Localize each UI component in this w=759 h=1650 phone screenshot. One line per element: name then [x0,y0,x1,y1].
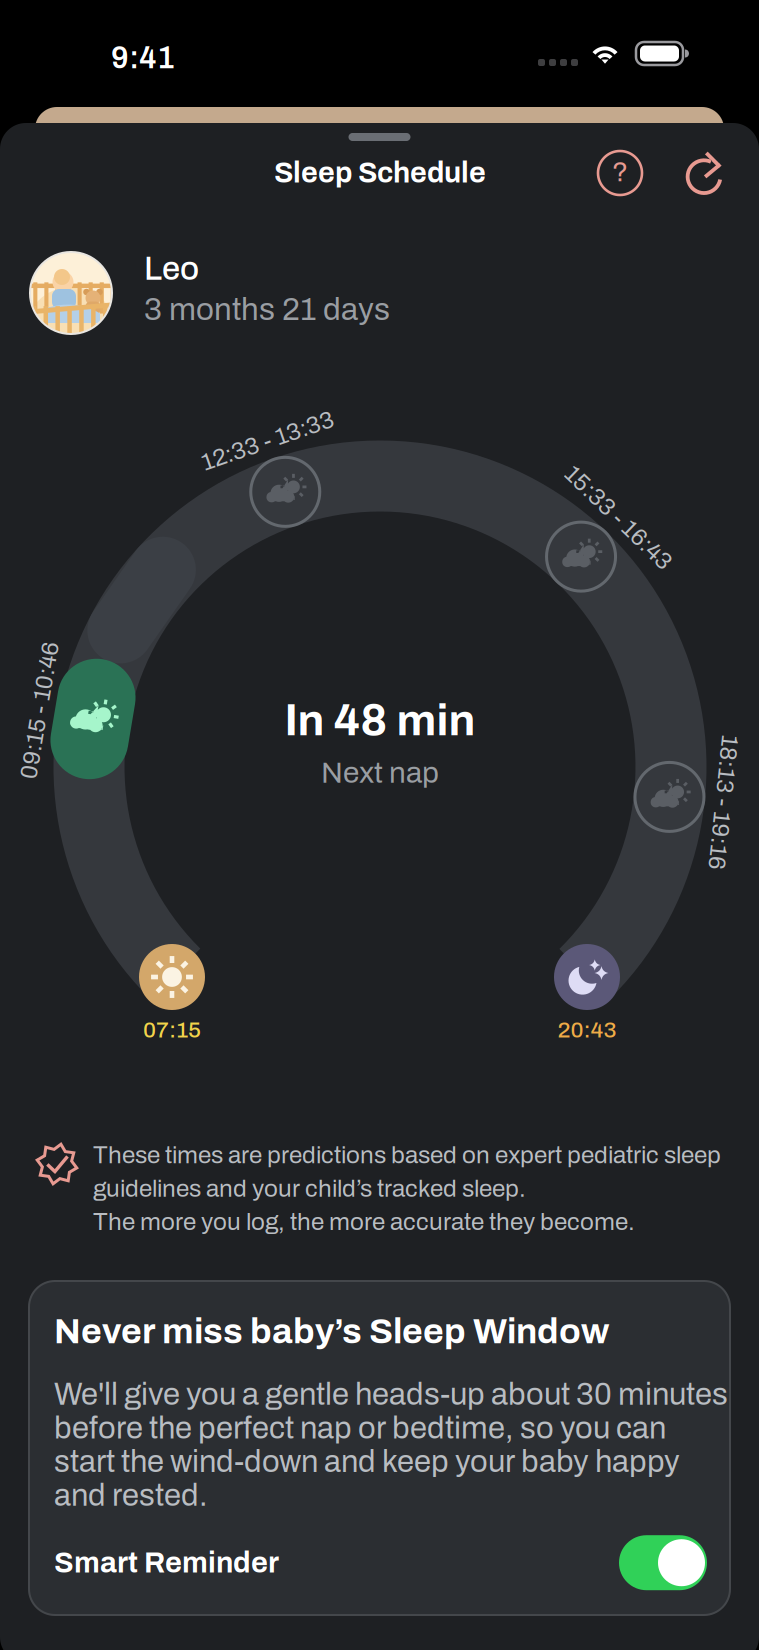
staticText: These times are predictions based on exp… [93,1142,721,1168]
staticText: 07:15 [143,1018,201,1042]
staticText: 18:13 - 19:16 [655,790,759,815]
staticText: The more you log, the more accurate they… [93,1209,635,1235]
staticText: Sleep Schedule [274,157,486,189]
staticText: ? [612,157,628,187]
staticText: 9:41 [111,41,175,75]
staticText: Smart Reminder [54,1547,279,1578]
staticText: 12:33 - 13:33 [198,428,337,454]
staticText: Next nap [321,757,439,789]
staticText: We'll give you a gentle heads-up about 3… [54,1378,728,1512]
staticText: In 48 min [284,696,475,745]
staticText: Leo [144,251,199,286]
staticText: guidelines and your child’s tracked slee… [93,1175,526,1202]
staticText: 15:33 - 16:43 [549,505,688,530]
staticText: 3 months 21 days [144,292,390,327]
staticText: Never miss baby’s Sleep Window [54,1312,609,1351]
button[interactable]: Help [591,144,649,202]
staticText: 20:43 [557,1018,616,1042]
staticText: 09:15 - 10:46 [0,697,109,723]
button[interactable]: Smart Reminder [619,1535,707,1590]
button[interactable]: Refresh [675,143,733,201]
